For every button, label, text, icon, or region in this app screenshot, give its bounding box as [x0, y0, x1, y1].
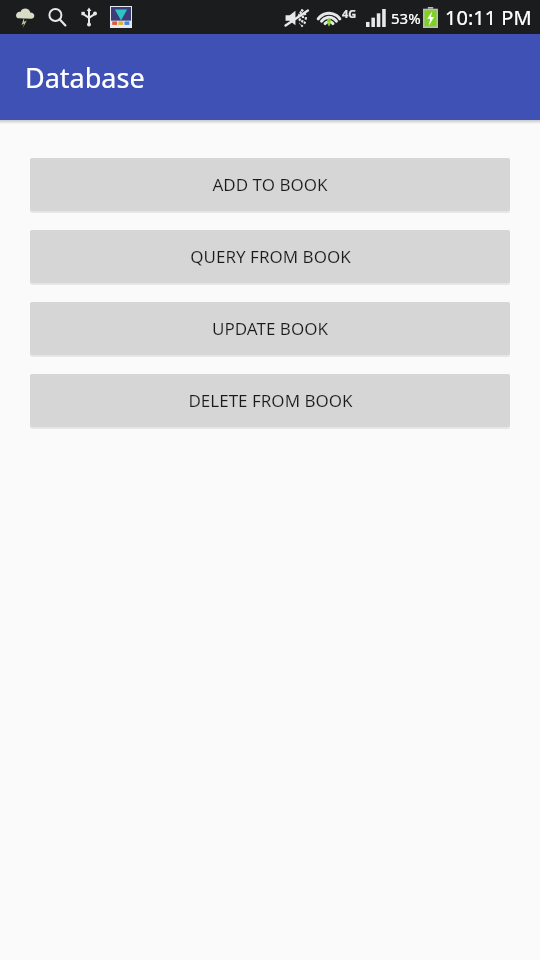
- staticText: Database: [25, 59, 145, 96]
- button[interactable]: QUERY FROM BOOK: [30, 230, 510, 283]
- staticText: UPDATE BOOK: [212, 317, 328, 340]
- button[interactable]: UPDATE BOOK: [30, 302, 510, 355]
- staticText: DELETE FROM BOOK: [188, 389, 353, 412]
- staticText: 10:11 PM: [445, 4, 532, 31]
- staticText: ADD TO BOOK: [212, 173, 328, 196]
- staticText: QUERY FROM BOOK: [190, 245, 351, 268]
- button[interactable]: ADD TO BOOK: [30, 158, 510, 211]
- staticText: 4G: [342, 6, 357, 21]
- button[interactable]: DELETE FROM BOOK: [30, 374, 510, 427]
- staticText: 53%: [391, 8, 421, 28]
